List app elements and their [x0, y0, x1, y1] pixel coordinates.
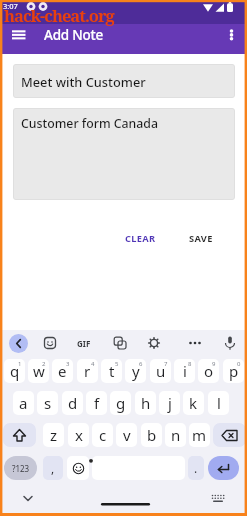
- staticText: n: [171, 425, 181, 445]
- staticText: c: [99, 425, 107, 445]
- staticText: y: [132, 361, 140, 381]
- button[interactable]: [187, 336, 203, 350]
- button[interactable]: f: [86, 391, 107, 415]
- button[interactable]: [222, 25, 241, 45]
- button[interactable]: GIF: [73, 336, 95, 350]
- staticText: 2: [42, 360, 46, 368]
- staticText: ?123: [12, 463, 30, 474]
- button[interactable]: n: [165, 423, 186, 447]
- button[interactable]: SAVE: [178, 228, 223, 248]
- staticText: o: [204, 361, 214, 381]
- staticText: m: [192, 425, 207, 445]
- staticText: 6: [139, 360, 143, 368]
- button[interactable]: y: [125, 359, 146, 383]
- staticText: p: [229, 361, 239, 381]
- button[interactable]: Meet with Customer: [13, 64, 235, 98]
- button[interactable]: a: [13, 391, 34, 415]
- button[interactable]: v: [116, 423, 137, 447]
- button[interactable]: t: [101, 359, 122, 383]
- button[interactable]: d: [62, 391, 83, 415]
- button[interactable]: [92, 456, 185, 480]
- staticText: 5: [115, 360, 119, 368]
- staticText: d: [68, 393, 78, 413]
- button[interactable]: [223, 335, 237, 351]
- button[interactable]: [6, 26, 32, 46]
- staticText: 9: [212, 360, 216, 368]
- staticText: l: [217, 393, 221, 413]
- button[interactable]: h: [135, 391, 156, 415]
- button[interactable]: e: [52, 359, 73, 383]
- staticText: 8: [188, 360, 192, 368]
- staticText: k: [189, 393, 198, 413]
- staticText: q: [10, 361, 20, 381]
- staticText: r: [84, 361, 91, 381]
- button[interactable]: [213, 423, 246, 447]
- staticText: i: [183, 361, 187, 381]
- button[interactable]: [18, 490, 38, 506]
- button[interactable]: s: [37, 391, 58, 415]
- button[interactable]: g: [110, 391, 131, 415]
- staticText: b: [147, 425, 157, 445]
- button[interactable]: l: [208, 391, 229, 415]
- staticText: j: [168, 393, 172, 413]
- staticText: s: [44, 393, 52, 413]
- button[interactable]: Customer form Canada: [13, 108, 235, 200]
- staticText: CLEAR: [125, 232, 156, 245]
- staticText: u: [156, 361, 166, 381]
- staticText: 1: [18, 360, 22, 368]
- button[interactable]: [208, 456, 239, 480]
- staticText: hack-cheat.org: [4, 4, 114, 26]
- button[interactable]: p: [223, 359, 244, 383]
- staticText: 3:07: [3, 1, 18, 11]
- button[interactable]: u: [150, 359, 171, 383]
- button[interactable]: k: [183, 391, 204, 415]
- staticText: Meet with Customer: [21, 73, 146, 90]
- button[interactable]: [43, 336, 57, 350]
- button[interactable]: b: [141, 423, 162, 447]
- button[interactable]: c: [92, 423, 113, 447]
- button[interactable]: .: [188, 456, 204, 480]
- staticText: a: [19, 393, 28, 413]
- button[interactable]: [3, 423, 36, 447]
- staticText: x: [75, 425, 83, 445]
- staticText: .: [194, 460, 198, 476]
- button[interactable]: [147, 336, 161, 350]
- button[interactable]: r: [77, 359, 98, 383]
- button[interactable]: m: [189, 423, 210, 447]
- staticText: h: [141, 393, 151, 413]
- staticText: 3: [66, 360, 70, 368]
- staticText: z: [50, 425, 58, 445]
- staticText: 4: [91, 360, 95, 368]
- staticText: t: [109, 361, 115, 381]
- button[interactable]: [9, 334, 28, 353]
- button[interactable]: z: [43, 423, 64, 447]
- staticText: Customer form Canada: [21, 115, 159, 132]
- staticText: GIF: [77, 338, 91, 349]
- staticText: 0: [237, 360, 241, 368]
- button[interactable]: ,: [43, 456, 63, 480]
- staticText: Add Note: [44, 26, 104, 44]
- button[interactable]: [67, 456, 89, 480]
- button[interactable]: i: [174, 359, 195, 383]
- button[interactable]: CLEAR: [116, 228, 164, 248]
- staticText: e: [58, 361, 67, 381]
- staticText: w: [33, 361, 45, 381]
- button[interactable]: q: [4, 359, 25, 383]
- staticText: SAVE: [189, 232, 213, 245]
- button[interactable]: j: [159, 391, 180, 415]
- button[interactable]: o: [198, 359, 219, 383]
- staticText: g: [116, 393, 126, 413]
- button[interactable]: w: [28, 359, 49, 383]
- button[interactable]: ?123: [4, 456, 37, 480]
- staticText: v: [123, 425, 131, 445]
- staticText: f: [94, 393, 100, 413]
- staticText: ,: [51, 460, 55, 476]
- button[interactable]: x: [68, 423, 89, 447]
- button[interactable]: [113, 336, 127, 350]
- staticText: 7: [164, 360, 168, 368]
